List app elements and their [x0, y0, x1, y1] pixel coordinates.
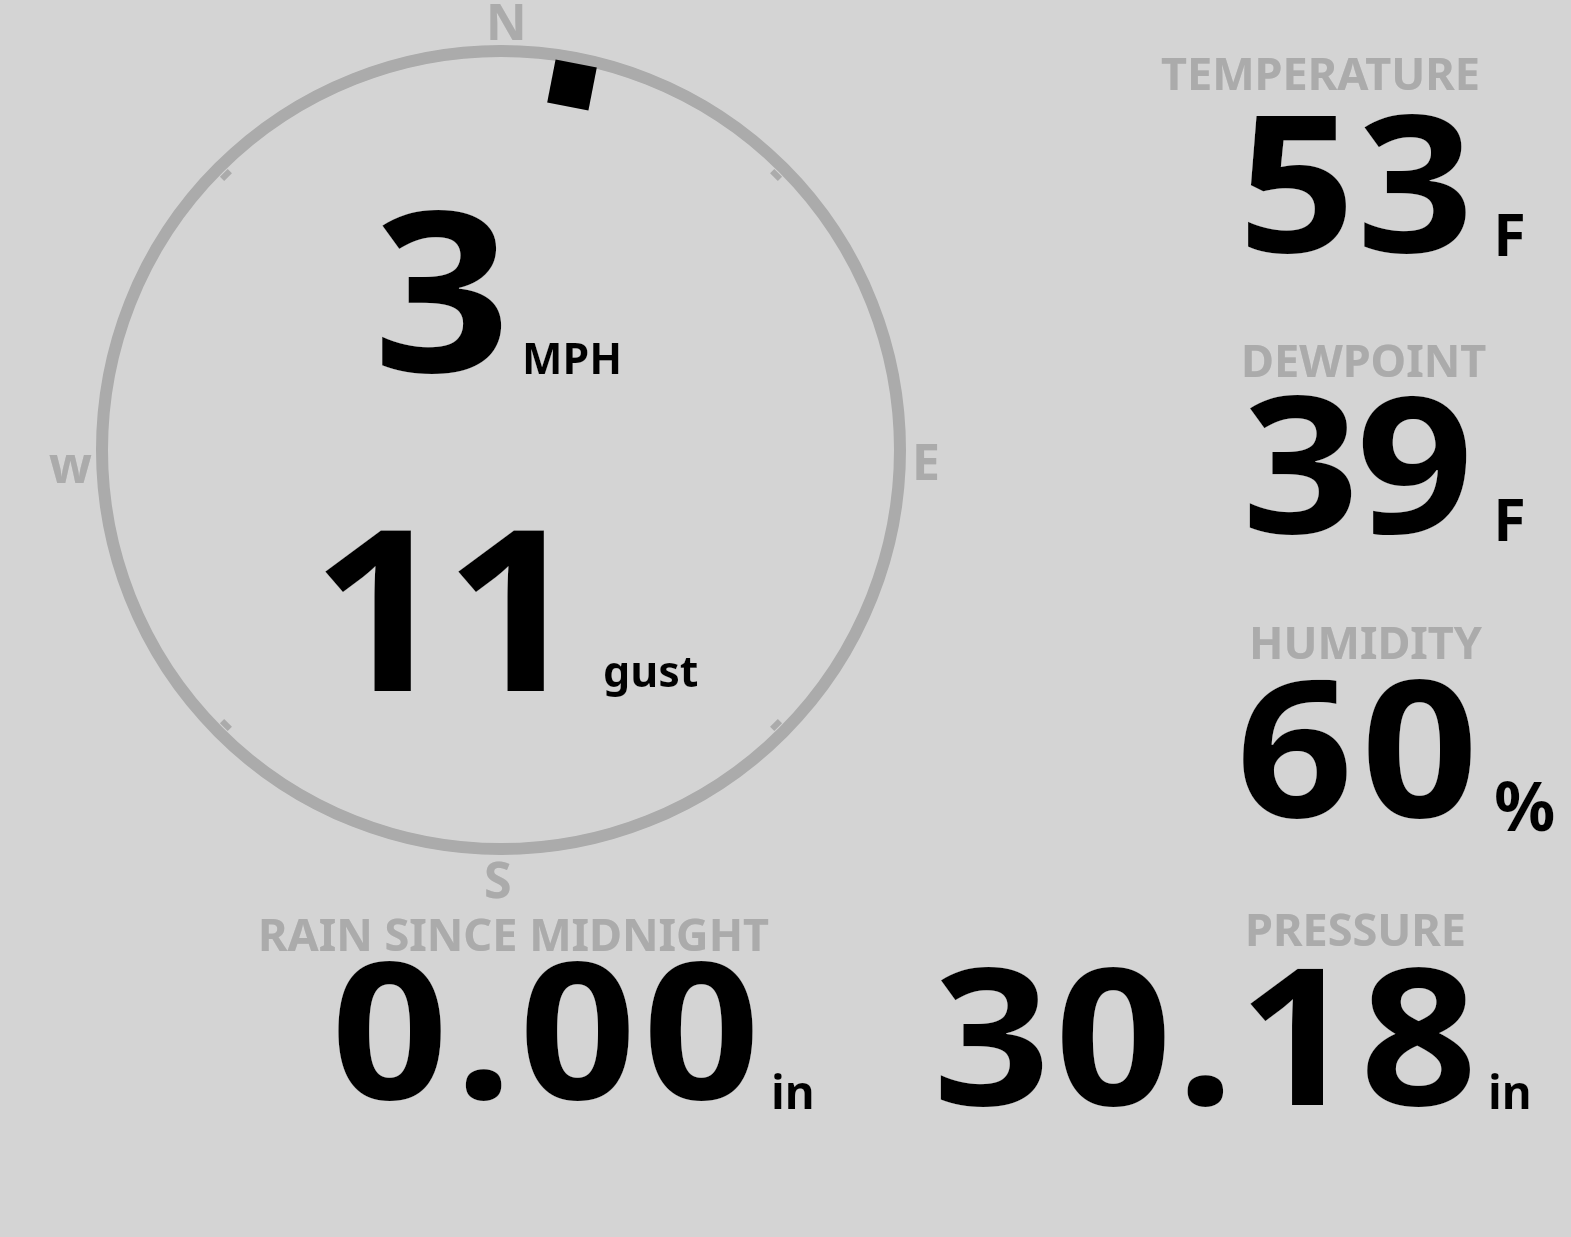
- staticText: w: [49, 430, 92, 498]
- button[interactable]: Dewpoint 39 degrees Fahrenheit: [1150, 326, 1560, 556]
- staticText: 30.18: [933, 902, 1483, 1122]
- button[interactable]: Pressure 30.18 inches: [930, 900, 1540, 1120]
- staticText: in: [771, 1060, 815, 1123]
- staticText: F: [1493, 192, 1526, 274]
- staticText: RAIN SINCE MIDNIGHT: [258, 903, 770, 964]
- staticText: gust: [603, 641, 699, 700]
- staticText: 53: [1238, 49, 1476, 279]
- button[interactable]: Wind speed 3 miles per hour, gusting 11: [97, 46, 905, 854]
- staticText: 60: [1236, 614, 1487, 844]
- staticText: S: [484, 845, 512, 913]
- staticText: DEWPOINT: [1241, 329, 1487, 390]
- staticText: E: [912, 427, 940, 495]
- staticText: HUMIDITY: [1249, 611, 1482, 672]
- staticText: in: [1488, 1060, 1532, 1123]
- staticText: 0.00: [331, 896, 767, 1116]
- staticText: MPH: [522, 328, 623, 387]
- staticText: TEMPERATURE: [1161, 42, 1480, 103]
- staticText: 39: [1242, 330, 1471, 560]
- staticText: %: [1494, 758, 1556, 851]
- staticText: 3: [373, 134, 511, 438]
- button[interactable]: Humidity 60 percent: [1150, 610, 1560, 840]
- staticText: N: [486, 0, 527, 55]
- staticText: 11: [311, 452, 578, 757]
- staticText: PRESSURE: [1245, 898, 1466, 959]
- button[interactable]: Rain since midnight 0.00 inches: [250, 900, 820, 1120]
- staticText: F: [1493, 477, 1526, 559]
- button[interactable]: Temperature 53 degrees Fahrenheit: [1150, 40, 1560, 270]
